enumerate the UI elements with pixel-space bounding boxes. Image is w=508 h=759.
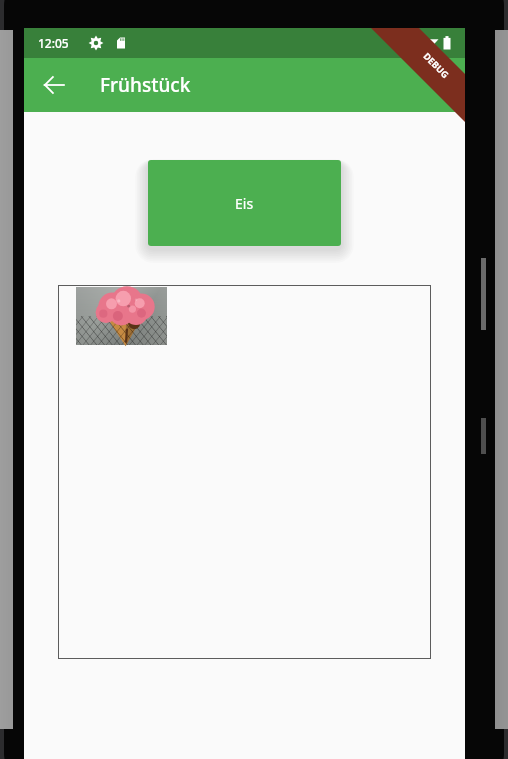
button[interactable]: Eis [148,160,341,246]
staticText: DEBUG [421,50,452,80]
button[interactable]: Back [30,61,78,109]
staticText: Eis [235,194,254,213]
staticText: 12:05 [38,35,69,51]
staticText: Frühstück [100,72,191,98]
